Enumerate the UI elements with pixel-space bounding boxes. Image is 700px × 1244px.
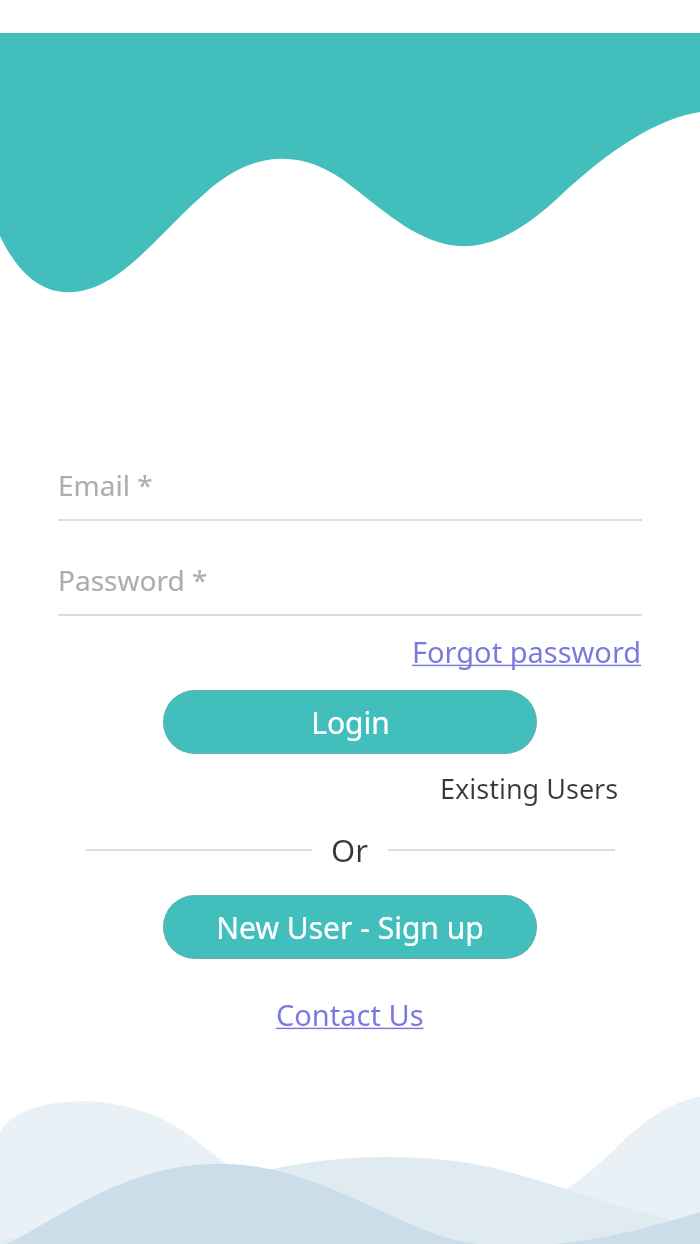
staticText: Login [311,702,390,743]
staticText: Forgot password [412,632,642,671]
button[interactable]: Forgot password [412,632,642,671]
staticText: New User - Sign up [216,907,484,948]
staticText: Email * [58,466,153,504]
button[interactable]: New User - Sign up [163,895,537,959]
staticText: Or [331,829,369,871]
button[interactable]: Login [163,690,537,754]
staticText: Password * [58,561,208,599]
staticText: Existing Users [440,770,619,807]
button[interactable]: Contact Us [276,995,424,1034]
button[interactable]: Password * [58,561,642,616]
button[interactable]: Email * [58,466,642,521]
staticText: Contact Us [276,995,424,1034]
